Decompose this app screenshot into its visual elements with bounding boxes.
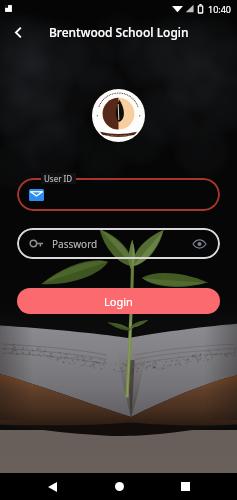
button[interactable]: Back [3, 17, 33, 47]
button[interactable]: Home [104, 473, 134, 500]
button[interactable]: Back [37, 473, 67, 500]
button[interactable] [17, 178, 220, 211]
staticText: 10:40 [208, 3, 232, 15]
staticText: User ID [44, 173, 73, 184]
staticText: Login [104, 294, 133, 309]
button[interactable]: Show password [191, 236, 207, 252]
button[interactable]: Password [17, 228, 220, 259]
button[interactable]: Login [17, 288, 220, 314]
staticText: Password [52, 237, 98, 251]
button[interactable]: Recent apps [170, 473, 200, 500]
staticText: Brentwood School Login [49, 24, 189, 40]
